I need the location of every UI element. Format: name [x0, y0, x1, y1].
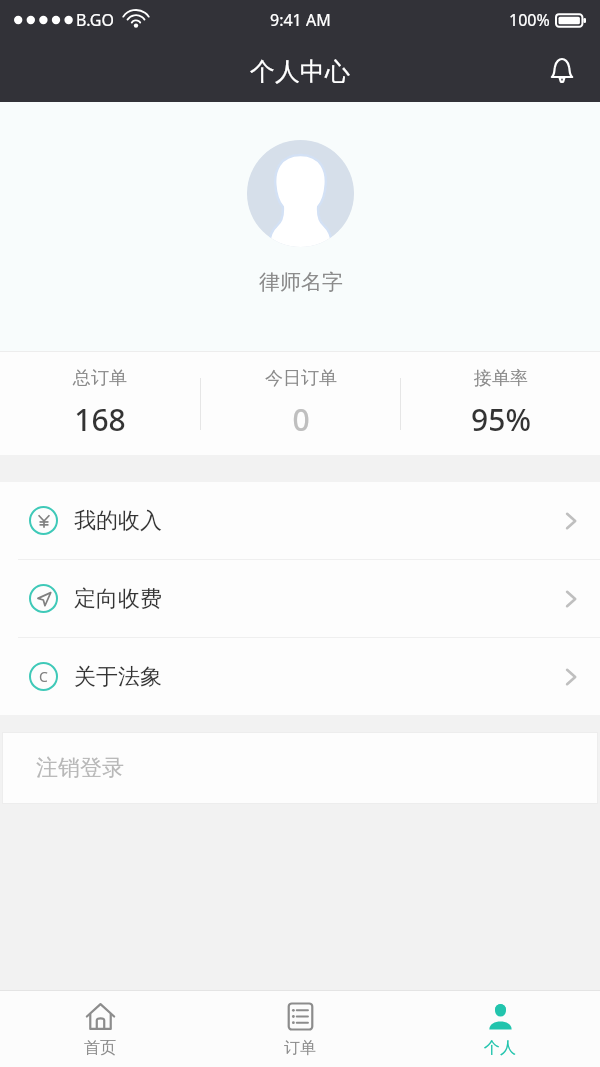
button[interactable]: 注销登录	[2, 732, 598, 804]
staticText: C	[39, 667, 48, 686]
staticText: 168	[74, 399, 126, 440]
button[interactable]: 接单率	[401, 367, 600, 440]
button[interactable]: 我的收入	[0, 482, 600, 559]
staticText: 订单	[284, 1038, 316, 1058]
staticText: 95%	[471, 399, 531, 440]
staticText: 律师名字	[259, 269, 343, 295]
staticText: 个人	[484, 1038, 516, 1058]
button[interactable]: Notifications	[538, 47, 586, 95]
staticText: 首页	[84, 1038, 116, 1058]
button[interactable]: C	[0, 638, 600, 715]
button[interactable]: 总订单	[0, 367, 200, 440]
button[interactable]: Avatar	[247, 140, 354, 247]
staticText: 0	[292, 399, 310, 440]
staticText: 100%	[509, 9, 550, 31]
staticText: 注销登录	[36, 754, 124, 782]
button[interactable]: 首页	[0, 991, 200, 1067]
button[interactable]: 订单	[200, 991, 400, 1067]
staticText: 9:41 AM	[270, 9, 331, 31]
staticText: 个人中心	[250, 56, 350, 87]
staticText: 我的收入	[74, 507, 162, 535]
button[interactable]: 个人	[400, 991, 600, 1067]
button[interactable]: 今日订单	[201, 367, 400, 440]
staticText: 接单率	[474, 367, 528, 390]
staticText: 关于法象	[74, 663, 162, 691]
staticText: 总订单	[73, 367, 127, 390]
staticText: B.GO	[76, 9, 114, 31]
button[interactable]: 定向收费	[0, 560, 600, 637]
staticText: 定向收费	[74, 585, 162, 613]
staticText: 今日订单	[265, 367, 337, 390]
